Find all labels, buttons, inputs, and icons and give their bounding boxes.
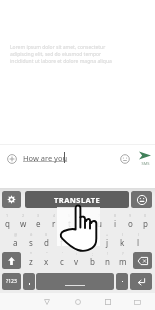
button[interactable]: 0 — [138, 212, 153, 230]
button[interactable]: ( — [115, 231, 130, 249]
staticText: incididunt ut labore et dolore magna ali… — [10, 58, 112, 65]
staticText: z — [29, 256, 33, 267]
staticText: w — [20, 218, 27, 229]
staticText: p — [143, 218, 148, 229]
staticText: o — [128, 218, 133, 229]
button[interactable]: 2 — [16, 212, 31, 230]
staticText: j — [106, 237, 109, 248]
button[interactable]: : — [69, 250, 84, 268]
staticText: How are you — [23, 153, 68, 163]
staticText: q — [5, 218, 10, 229]
staticText: : — [76, 251, 77, 256]
button[interactable]: * — [23, 250, 38, 268]
staticText: @ — [14, 232, 18, 237]
button[interactable]: 9 — [123, 212, 138, 230]
button[interactable]: Backspace — [133, 252, 152, 269]
staticText: 4 — [53, 213, 56, 218]
staticText: ! — [107, 251, 108, 256]
button[interactable]: ? — [115, 250, 130, 268]
button[interactable]: # — [23, 231, 38, 249]
staticText: v — [74, 256, 79, 267]
staticText: + — [106, 232, 109, 237]
button[interactable]: Shift — [2, 252, 21, 269]
button[interactable]: Home — [68, 294, 88, 310]
staticText: d — [44, 237, 49, 248]
button[interactable]: ' — [54, 250, 69, 268]
button[interactable]: 5 — [62, 212, 77, 230]
button[interactable]: TRANSLATE — [25, 191, 129, 208]
button[interactable]: ) — [131, 231, 146, 249]
staticText: SMS — [141, 161, 150, 166]
button[interactable]: Back — [37, 294, 57, 310]
button[interactable]: 6 — [77, 212, 92, 230]
staticText: u — [97, 218, 102, 229]
staticText: 7 — [98, 213, 101, 218]
staticText: " — [46, 251, 48, 256]
staticText: m — [119, 256, 127, 267]
staticText: k — [120, 237, 125, 248]
button[interactable]: Hide keyboard — [127, 294, 147, 310]
staticText: TRANSLATE — [54, 195, 101, 205]
button[interactable]: & — [69, 231, 84, 249]
staticText: b — [90, 256, 95, 267]
button[interactable]: ?123 — [2, 273, 21, 290]
staticText: l — [137, 237, 140, 248]
button[interactable]: Enter — [130, 273, 152, 290]
staticText: c — [60, 256, 64, 267]
staticText: 1 — [6, 213, 9, 218]
staticText: 6 — [83, 213, 86, 218]
staticText: ) — [138, 232, 140, 237]
staticText: e — [36, 218, 41, 229]
button[interactable]: Recent apps — [98, 294, 118, 310]
button[interactable]: Space — [36, 273, 114, 290]
staticText: s — [29, 237, 33, 248]
button[interactable]: $ — [39, 231, 54, 249]
staticText: ?123 — [6, 278, 17, 285]
staticText: Lorem ipsum dolor sit amet, consectetur — [10, 44, 106, 51]
staticText: ' — [62, 251, 63, 256]
staticText: t — [68, 218, 71, 229]
staticText: r — [52, 218, 56, 229]
staticText: ? — [122, 251, 124, 256]
button[interactable]: @ — [8, 231, 23, 249]
button[interactable]: Comma — [23, 273, 35, 290]
staticText: ; — [92, 251, 93, 256]
staticText: adipiscing elit, sed do eiusmod tempor — [10, 51, 102, 58]
staticText: 0 — [144, 213, 147, 218]
button[interactable]: Add attachment — [2, 149, 21, 168]
staticText: a — [13, 237, 18, 248]
staticText: _ — [61, 232, 63, 237]
button[interactable]: - — [85, 231, 100, 249]
staticText: $ — [45, 232, 48, 237]
button[interactable]: Emoji keyboard — [131, 191, 152, 208]
button[interactable]: Send SMS — [134, 146, 155, 170]
staticText: f — [60, 237, 63, 248]
button[interactable]: ! — [100, 250, 115, 268]
staticText: g — [74, 237, 79, 248]
button[interactable]: Keyboard settings — [2, 191, 21, 208]
button[interactable]: + — [100, 231, 115, 249]
button[interactable]: ; — [85, 250, 100, 268]
staticText: y — [82, 218, 87, 229]
staticText: i — [114, 218, 117, 229]
staticText: * — [30, 251, 32, 256]
button[interactable]: _ — [54, 231, 69, 249]
staticText: 8 — [114, 213, 117, 218]
button[interactable]: " — [39, 250, 54, 268]
staticText: x — [44, 256, 49, 267]
button[interactable]: Period — [116, 273, 128, 290]
staticText: n — [105, 256, 110, 267]
button[interactable]: 8 — [108, 212, 123, 230]
staticText: 2 — [22, 213, 25, 218]
staticText: ( — [122, 232, 124, 237]
staticText: h — [90, 237, 95, 248]
button[interactable]: Emoji — [115, 149, 134, 168]
button[interactable]: 4 — [46, 212, 61, 230]
button[interactable]: 3 — [31, 212, 46, 230]
staticText: 3 — [37, 213, 40, 218]
button[interactable]: 7 — [92, 212, 107, 230]
button[interactable]: 1 — [0, 212, 15, 230]
